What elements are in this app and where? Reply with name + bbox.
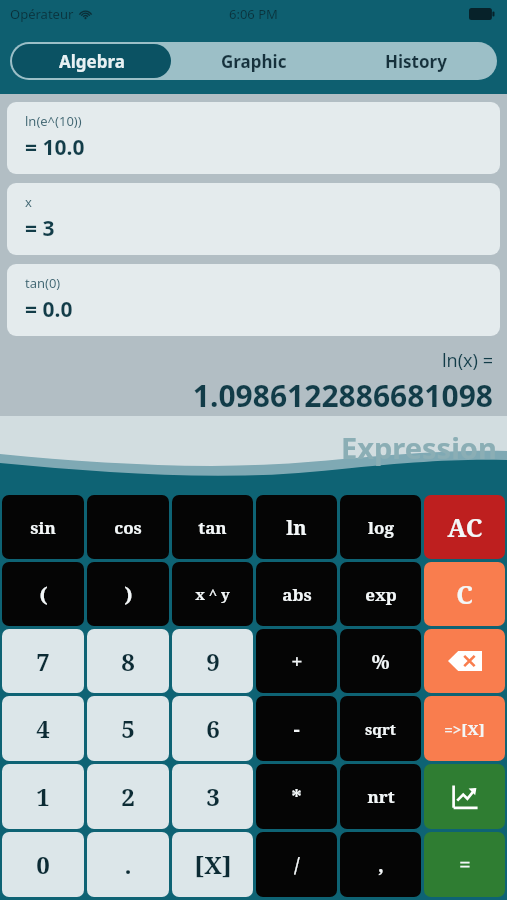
staticText: % xyxy=(371,648,390,675)
button[interactable]: Backspace xyxy=(424,629,505,693)
button[interactable]: x ^ y xyxy=(172,562,253,626)
button[interactable]: AC xyxy=(424,495,505,559)
staticText: tan xyxy=(198,516,227,539)
staticText: sin xyxy=(30,516,56,539)
staticText: ln xyxy=(286,514,307,541)
button[interactable]: / xyxy=(256,832,337,897)
staticText: Expression xyxy=(341,428,497,467)
staticText: 0 xyxy=(36,848,50,881)
staticText: sqrt xyxy=(365,719,396,739)
staticText: C xyxy=(456,577,473,611)
button[interactable]: C xyxy=(424,562,505,626)
staticText: nrt xyxy=(367,785,395,808)
staticText: = xyxy=(459,851,471,878)
button[interactable]: History xyxy=(335,42,497,80)
button[interactable]: Algebra xyxy=(12,44,171,78)
staticText: x xyxy=(25,193,32,211)
staticText: [X] xyxy=(194,848,232,881)
staticText: =>[X] xyxy=(444,719,485,739)
staticText: ( xyxy=(39,581,48,608)
button[interactable]: sin xyxy=(2,495,84,559)
button[interactable]: + xyxy=(256,629,337,693)
button[interactable]: log xyxy=(340,495,421,559)
staticText: 3 xyxy=(206,780,220,813)
button[interactable]: ) xyxy=(87,562,169,626)
button[interactable]: tan(0) xyxy=(7,264,500,336)
button[interactable]: 5 xyxy=(87,696,169,761)
button[interactable]: = xyxy=(424,832,505,897)
staticText: abs xyxy=(282,583,312,606)
button[interactable]: nrt xyxy=(340,764,421,829)
staticText: 8 xyxy=(121,645,135,678)
staticText: AC xyxy=(447,510,483,544)
staticText: History xyxy=(385,50,447,73)
button[interactable]: % xyxy=(340,629,421,693)
staticText: + xyxy=(291,648,303,675)
staticText: 6:06 PM xyxy=(229,5,278,23)
staticText: Opérateur xyxy=(10,5,74,23)
button[interactable]: * xyxy=(256,764,337,829)
staticText: 9 xyxy=(206,645,220,678)
staticText: 1.0986122886681098 xyxy=(0,375,493,416)
button[interactable]: [X] xyxy=(172,832,253,897)
staticText: - xyxy=(293,715,300,742)
staticText: 6 xyxy=(206,712,220,745)
button[interactable]: tan xyxy=(172,495,253,559)
staticText: exp xyxy=(365,583,397,606)
staticText: ) xyxy=(124,581,133,608)
button[interactable]: 0 xyxy=(2,832,84,897)
staticText: Algebra xyxy=(59,50,125,73)
button[interactable]: ( xyxy=(2,562,84,626)
staticText: x ^ y xyxy=(195,584,230,604)
staticText: cos xyxy=(114,516,142,539)
button[interactable]: x xyxy=(7,183,500,255)
staticText: 1 xyxy=(36,780,50,813)
staticText: * xyxy=(291,783,302,810)
staticText: , xyxy=(378,851,384,878)
staticText: 2 xyxy=(121,780,135,813)
button[interactable]: =>[X] xyxy=(424,696,505,761)
button[interactable]: 8 xyxy=(87,629,169,693)
staticText: tan(0) xyxy=(25,274,61,292)
button[interactable]: ln(e^(10)) xyxy=(7,102,500,174)
button[interactable]: ln xyxy=(256,495,337,559)
button[interactable]: 1 xyxy=(2,764,84,829)
button[interactable]: 9 xyxy=(172,629,253,693)
button[interactable]: cos xyxy=(87,495,169,559)
staticText: . xyxy=(124,848,132,881)
button[interactable]: . xyxy=(87,832,169,897)
staticText: = 0.0 xyxy=(25,295,73,324)
button[interactable]: 3 xyxy=(172,764,253,829)
staticText: log xyxy=(368,516,394,539)
button[interactable]: Graphic xyxy=(173,42,335,80)
staticText: ln(e^(10)) xyxy=(25,112,82,130)
button[interactable]: exp xyxy=(340,562,421,626)
button[interactable]: 4 xyxy=(2,696,84,761)
button[interactable]: , xyxy=(340,832,421,897)
staticText: Graphic xyxy=(221,50,287,73)
button[interactable]: 6 xyxy=(172,696,253,761)
button[interactable]: Show graph xyxy=(424,764,505,829)
button[interactable]: abs xyxy=(256,562,337,626)
staticText: 4 xyxy=(36,712,50,745)
staticText: = 10.0 xyxy=(25,133,85,162)
button[interactable]: - xyxy=(256,696,337,761)
button[interactable]: sqrt xyxy=(340,696,421,761)
button[interactable]: 2 xyxy=(87,764,169,829)
staticText: 5 xyxy=(121,712,135,745)
staticText: = 3 xyxy=(25,214,55,243)
staticText: ln(x) = xyxy=(0,348,493,373)
staticText: / xyxy=(294,851,300,878)
staticText: 7 xyxy=(36,645,50,678)
button[interactable]: 7 xyxy=(2,629,84,693)
